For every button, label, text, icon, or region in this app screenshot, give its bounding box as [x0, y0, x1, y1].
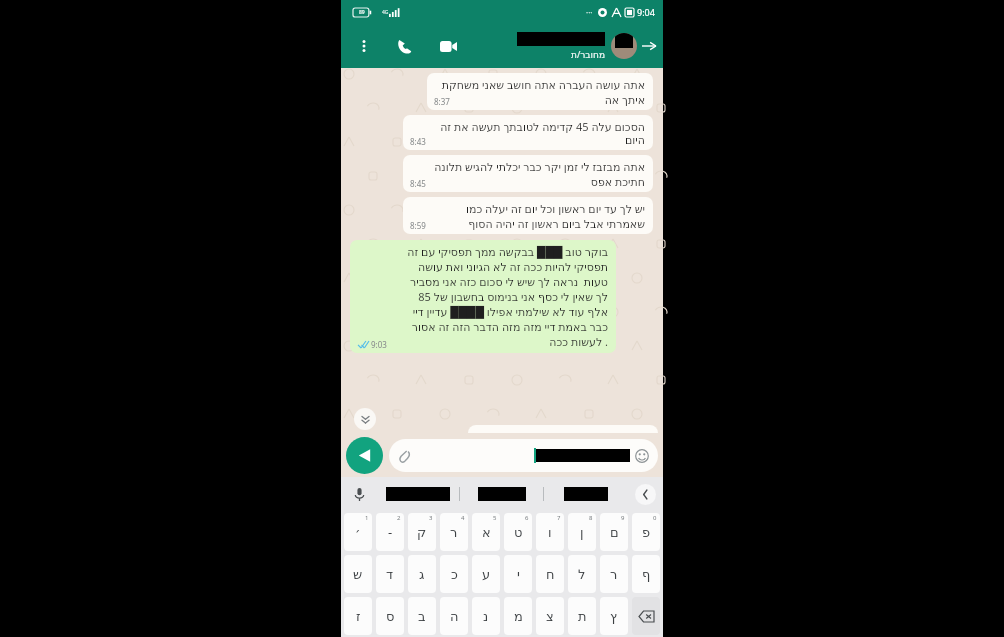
staticText: טעות נראה לך שיש לי סכום כזה אני מסביר [410, 274, 608, 289]
staticText: 1 [365, 514, 369, 522]
button[interactable]: ק [408, 513, 436, 551]
staticText: אלף עוד לא שילמתי אפילו ████ עדיין דיי [412, 304, 608, 319]
staticText: 9:04 [637, 6, 655, 18]
button[interactable]: ד [376, 555, 404, 593]
button[interactable]: Forward [639, 36, 659, 56]
button[interactable]: ט [504, 513, 532, 551]
staticText: שאמרתי אבל ביום ראשון זה יהיה הסוף [468, 216, 645, 231]
staticText: ח [546, 567, 555, 582]
staticText: חתיכת אפס [590, 174, 645, 189]
staticText: ל [578, 567, 586, 582]
button[interactable]: ת [568, 597, 596, 635]
button[interactable]: ר [600, 555, 628, 593]
button[interactable]: נ [472, 597, 500, 635]
button[interactable]: ע [472, 555, 500, 593]
button[interactable]: ז [344, 597, 372, 635]
staticText: לך שאין לי כסף אני בנימוס בחשבון של 85 [418, 289, 608, 304]
staticText: ע [482, 567, 491, 582]
staticText: כבר באמת דיי מזה מזה הדבר הזה זה אסור [411, 319, 608, 334]
staticText: א [482, 525, 491, 540]
staticText: אתה מבזבז לי זמן יקר כבר יכלתי להגיש תלו… [434, 159, 645, 174]
staticText: 4G [382, 9, 389, 16]
button[interactable]: Video call [435, 33, 461, 59]
button[interactable]: ה [440, 597, 468, 635]
staticText: ··· [586, 7, 593, 18]
button[interactable]: Expand [627, 477, 663, 511]
staticText: 8:59 [410, 220, 426, 231]
staticText: ה [450, 609, 459, 624]
staticText: ר [610, 567, 618, 582]
button[interactable]: אתה מבזבז לי זמן יקר כבר יכלתי להגיש תלו… [403, 155, 653, 192]
staticText: נ [483, 609, 489, 624]
button[interactable]: פ [632, 513, 660, 551]
staticText: 8:43 [410, 136, 426, 147]
staticText: ו [548, 525, 552, 540]
button[interactable]: Backspace [632, 597, 660, 635]
button[interactable]: כ [440, 555, 468, 593]
button[interactable]: ם [600, 513, 628, 551]
button[interactable]: ן [568, 513, 596, 551]
staticText: בוקר טוב ███ בבקשה ממך תפסיקי עם זה [407, 244, 608, 259]
button[interactable]: ג [408, 555, 436, 593]
staticText: 8:45 [410, 178, 426, 189]
staticText: כ [451, 567, 458, 582]
staticText: פ [642, 525, 651, 540]
staticText: ד [386, 567, 394, 582]
button[interactable] [389, 439, 658, 472]
staticText: ג [419, 567, 425, 582]
staticText: ס [386, 609, 395, 624]
button[interactable]: More options [353, 35, 375, 57]
staticText: ב [418, 609, 426, 624]
button[interactable]: הסכום עלה 45 קדימה לטובתך תעשה את זה [403, 115, 653, 150]
staticText: ת [578, 609, 587, 624]
staticText: ט [514, 525, 523, 540]
staticText: 2 [397, 514, 401, 522]
button[interactable]: Suggestion 1 [377, 477, 459, 511]
button[interactable]: י [504, 555, 532, 593]
button[interactable]: ו [536, 513, 564, 551]
button[interactable]: ץ [600, 597, 628, 635]
button[interactable]: מ [504, 597, 532, 635]
staticText: 6 [525, 514, 529, 522]
button[interactable]: מחובר/ת [517, 32, 659, 60]
button[interactable]: יש לך עד יום ראשון וכל יום זה יעלה כמו [403, 197, 653, 234]
button[interactable]: ס [376, 597, 404, 635]
button[interactable]: ח [536, 555, 564, 593]
staticText: ץ [610, 609, 618, 624]
button[interactable]: ש [344, 555, 372, 593]
staticText: 89 [359, 9, 365, 16]
button[interactable]: בוקר טוב ███ בבקשה ממך תפסיקי עם זה [350, 240, 616, 353]
button[interactable]: Send [346, 437, 383, 474]
staticText: ם [610, 525, 619, 540]
staticText: ק [417, 525, 427, 540]
button[interactable]: Voice input [341, 477, 377, 511]
staticText: אתה עושה העברה אתה חושב שאני משחקת [441, 77, 645, 92]
button[interactable]: צ [536, 597, 564, 635]
staticText: 8:37 [434, 96, 450, 107]
staticText: ש [353, 567, 363, 582]
button[interactable]: Voice call [391, 33, 417, 59]
staticText: מ [514, 609, 523, 624]
button[interactable]: Suggestion 3 [544, 477, 627, 511]
button[interactable]: - [376, 513, 404, 551]
button[interactable]: Scroll to bottom [354, 408, 376, 430]
staticText: לעשות ככה . [549, 334, 608, 349]
button[interactable]: ל [568, 555, 596, 593]
button[interactable]: ף [632, 555, 660, 593]
staticText: הסכום עלה 45 קדימה לטובתך תעשה את זה [440, 119, 645, 134]
staticText: 9 [621, 514, 625, 522]
staticText: - [388, 523, 393, 541]
staticText: היום [625, 134, 645, 147]
button[interactable]: ר [440, 513, 468, 551]
staticText: 5 [493, 514, 497, 522]
staticText: צ [546, 609, 554, 624]
button[interactable]: Suggestion 2 [460, 477, 543, 511]
button[interactable]: אתה עושה העברה אתה חושב שאני משחקת [427, 73, 653, 110]
staticText: 8 [589, 514, 593, 522]
button[interactable]: ב [408, 597, 436, 635]
staticText: ן [580, 525, 584, 540]
staticText: יש לך עד יום ראשון וכל יום זה יעלה כמו [465, 201, 645, 216]
staticText: איתך אה [604, 92, 645, 107]
button[interactable]: א [472, 513, 500, 551]
button[interactable]: ׳ [344, 513, 372, 551]
